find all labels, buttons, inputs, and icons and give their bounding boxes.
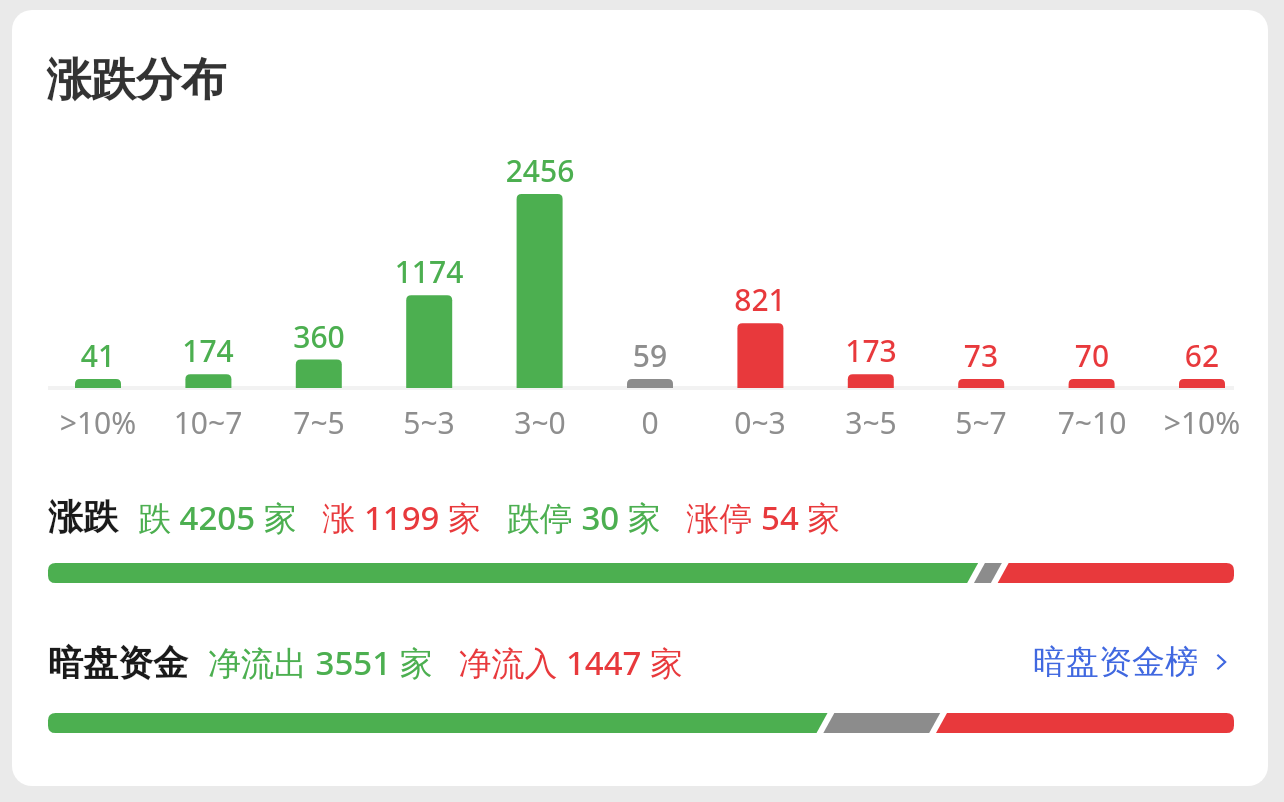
staticText: 涨跌 [48, 495, 118, 539]
staticText: 821 [705, 279, 815, 320]
button[interactable]: 暗盘资金 [48, 640, 1033, 685]
staticText: 174 [153, 330, 263, 371]
staticText: >10% [1147, 402, 1257, 443]
staticText: 3~0 [485, 402, 595, 443]
staticText: >10% [43, 402, 153, 443]
staticText: 5~3 [374, 402, 484, 443]
staticText: 涨跌分布 [46, 52, 226, 109]
staticText: 7~5 [264, 402, 374, 443]
staticText: 62 [1147, 335, 1257, 376]
staticText: 1174 [374, 251, 484, 292]
staticText: 70 [1037, 335, 1147, 376]
staticText: 7~10 [1037, 402, 1147, 443]
staticText: 净流出 3551 家 净流入 1447 家 [208, 640, 684, 685]
other: 暗盘资金榜 [1208, 649, 1234, 675]
staticText: 暗盘资金 [48, 641, 188, 685]
staticText: 173 [816, 330, 926, 371]
staticText: 0 [595, 402, 705, 443]
button[interactable]: 涨跌 [48, 488, 841, 546]
staticText: 10~7 [153, 402, 263, 443]
staticText: 跌 4205 家 涨 1199 家 跌停 30 家 涨停 54 家 [138, 495, 841, 540]
staticText: 73 [926, 335, 1036, 376]
staticText: 2456 [485, 150, 595, 191]
staticText: 360 [264, 316, 374, 357]
staticText: 暗盘资金榜 [1033, 641, 1198, 683]
staticText: 5~7 [926, 402, 1036, 443]
staticText: 0~3 [705, 402, 815, 443]
staticText: 41 [43, 335, 153, 376]
button[interactable]: 暗盘资金榜 [1033, 641, 1234, 683]
staticText: 59 [595, 335, 705, 376]
staticText: 3~5 [816, 402, 926, 443]
